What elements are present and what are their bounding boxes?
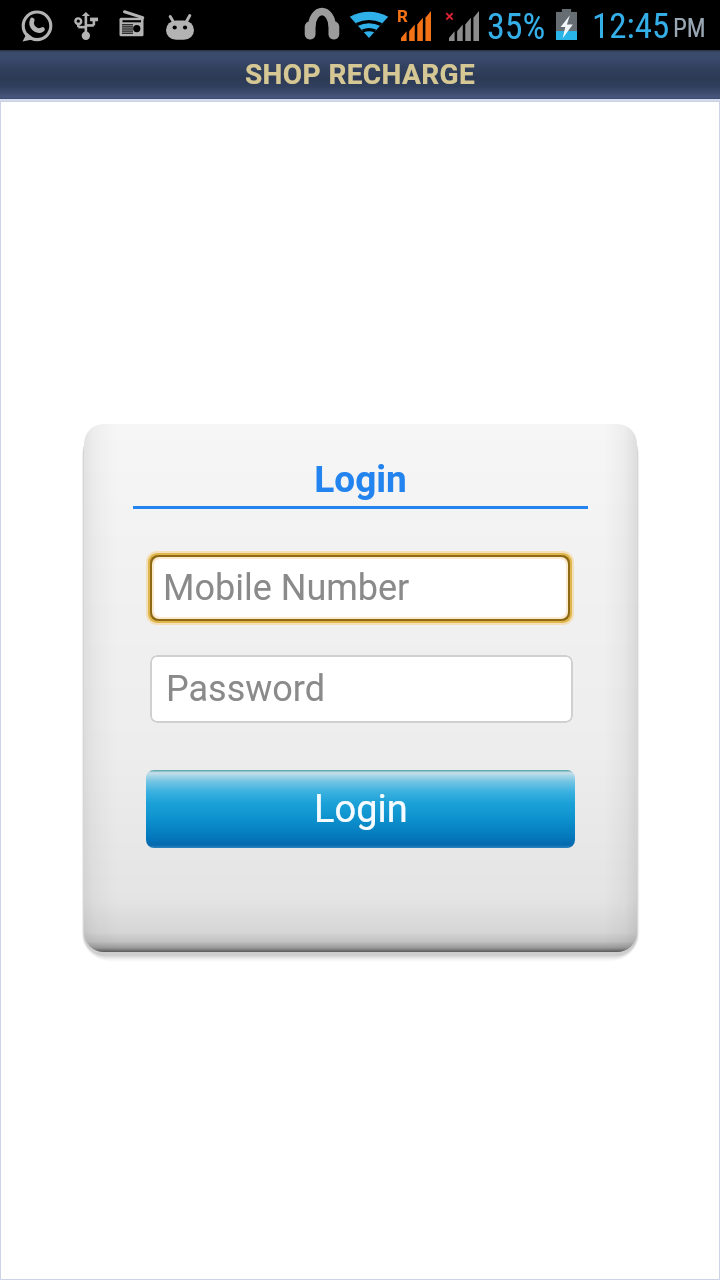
staticText: Login <box>84 458 637 501</box>
staticText: Mobile Number <box>163 567 410 609</box>
button[interactable]: Password <box>150 655 573 723</box>
staticText: PM <box>673 14 706 43</box>
staticText: 12:45 <box>592 6 670 47</box>
button[interactable]: Login <box>146 770 575 848</box>
other: FM radio <box>119 9 144 37</box>
button[interactable]: Mobile Number <box>146 551 574 625</box>
staticText: R <box>397 6 408 26</box>
other: No service on SIM 2 <box>445 6 479 41</box>
staticText: SHOP RECHARGE <box>245 58 476 91</box>
staticText: × <box>445 6 455 26</box>
other: Roaming mobile signal <box>397 6 431 41</box>
other: WhatsApp notification <box>22 12 52 42</box>
other: Headphones connected <box>304 10 340 40</box>
staticText: Password <box>166 668 326 710</box>
other: Battery charging 35 percent <box>556 9 577 40</box>
staticText: 35% <box>487 6 546 48</box>
other: Wi-Fi signal <box>349 9 389 39</box>
other: USB connected <box>76 12 95 40</box>
staticText: Login <box>314 787 408 832</box>
other: System update <box>166 15 194 40</box>
